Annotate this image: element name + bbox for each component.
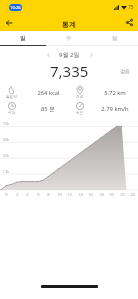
staticText: 85 분 [41,105,55,113]
staticText: 10:26 [10,5,21,11]
button[interactable]: Next day [85,49,97,61]
staticText: 속도 [76,110,84,115]
staticText: 14 [78,192,83,197]
staticText: 1.2k [3,170,10,174]
staticText: 시간 [8,110,16,115]
staticText: 16 [88,192,93,197]
button[interactable]: Back [1,15,16,30]
staticText: 12 [67,192,72,197]
staticText: 5.0k [3,138,10,142]
button[interactable]: 시간 [3,101,21,116]
staticText: 264 kcal [37,89,60,97]
staticText: 주 [66,35,72,42]
staticText: 75 [128,4,134,11]
button[interactable]: 주 [46,31,92,46]
staticText: 9월 2일 [59,51,80,59]
staticText: 걸음 [120,68,130,74]
staticText: 2.5k [3,154,10,158]
staticText: 18 [99,192,104,197]
staticText: 24 [130,192,135,197]
staticText: 2 [16,192,19,197]
button[interactable]: 일 [0,31,46,46]
staticText: 22 [120,192,125,197]
button[interactable]: 속도 [71,101,89,116]
button[interactable]: 거리 [71,85,89,100]
staticText: 7.5k [3,122,10,126]
staticText: 0 [5,192,8,197]
staticText: 통계 [62,20,76,29]
button[interactable]: Share [122,15,137,30]
staticText: 일 [20,35,26,42]
staticText: 월 [112,35,118,42]
staticText: 7,335 [50,61,89,79]
staticText: 거리 [76,94,84,99]
staticText: 2.79 km/h [101,105,129,113]
staticText: 칼로리 [6,94,18,99]
staticText: 8 [47,192,50,197]
staticText: 4 [26,192,29,197]
button[interactable]: 칼로리 [3,85,21,100]
staticText: 6 [37,192,40,197]
staticText: 20 [109,192,114,197]
button[interactable]: Previous day [42,49,54,61]
staticText: 5.72 km [104,89,126,97]
staticText: 10 [57,192,62,197]
button[interactable]: 월 [92,31,138,46]
